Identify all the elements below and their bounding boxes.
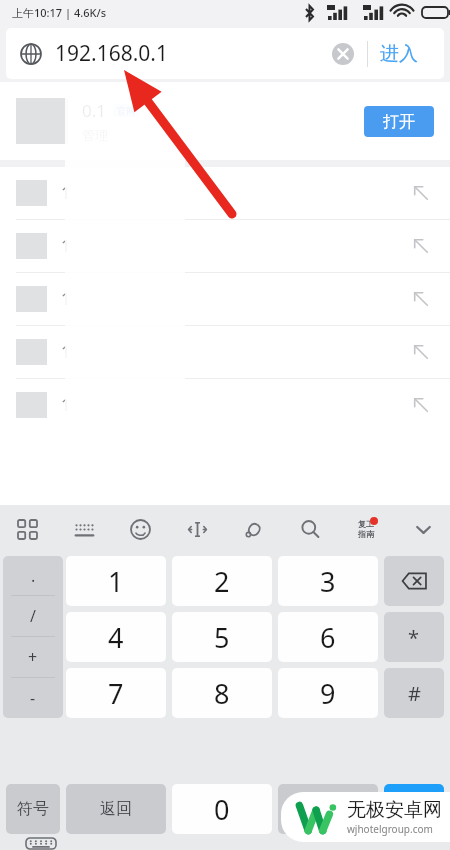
staticText: 上午10:17 | 4.6K/s [12,5,107,20]
button[interactable]: 复工 [349,512,383,546]
staticText: 打开 [383,112,415,132]
button[interactable]: 7 [66,668,166,718]
button[interactable]: 9 [278,668,378,718]
staticText: 进入 [397,799,431,820]
button[interactable]: Search [293,512,327,546]
button[interactable]: Switch keyboard [24,837,58,850]
button[interactable]: 0 [172,784,272,834]
staticText: 192.168.0.1 [55,39,168,68]
button[interactable]: 进入 [384,784,444,834]
staticText: 0 [214,791,230,828]
button[interactable]: 1 [0,326,450,378]
staticText: 6 [320,619,336,656]
staticText: 指南 [358,529,374,539]
staticText: 返回 [100,799,132,819]
button[interactable]: Apps [10,512,44,546]
button[interactable]: 8 [172,668,272,718]
button[interactable]: 2 [172,556,272,606]
button[interactable]: 0.1 [0,82,450,160]
button[interactable]: 192.168.0.1 [6,28,444,79]
button[interactable]: Clip [236,512,270,546]
staticText: 8 [214,675,230,712]
button[interactable]: 1 [0,167,450,219]
button[interactable]: Fill search [408,233,434,259]
button[interactable]: 打开 [364,106,434,137]
staticText: 1 [61,341,71,363]
button[interactable]: Cursor [180,512,214,546]
button[interactable]: Fill search [408,392,434,418]
button[interactable]: Hide keyboard [406,512,440,546]
staticText: 无极安卓网 [347,798,442,822]
staticText: 符号 [17,799,49,819]
staticText: 7 [108,675,124,712]
button[interactable]: * [384,612,444,662]
button[interactable]: Emoji [123,512,157,546]
button[interactable]: Fill search [408,180,434,206]
staticText: 3 [320,563,336,600]
staticText: 复工 [358,519,374,529]
staticText: . [31,565,36,587]
staticText: + [28,646,38,668]
staticText: wjhotelgroup.com [347,822,433,836]
button[interactable]: Fill search [408,339,434,365]
staticText: 9 [320,675,336,712]
staticText: 1 [108,563,124,600]
button[interactable]: 5 [172,612,272,662]
staticText: 1 [61,235,71,257]
button[interactable]: 1 [0,220,450,272]
button[interactable]: 1 [0,379,450,431]
button[interactable]: Backspace [384,556,444,606]
staticText: 1 [61,288,71,310]
button[interactable]: # [384,668,444,718]
staticText: 1 [61,394,71,416]
button[interactable]: 1 [0,273,450,325]
button[interactable]: 4 [66,612,166,662]
staticText: / [30,605,36,627]
button[interactable]: 返回 [66,784,166,834]
staticText: 进入 [380,42,418,66]
button[interactable]: 6 [278,612,378,662]
staticText: # [408,680,421,707]
button[interactable]: Keyboard [67,512,101,546]
button[interactable]: Clear [328,39,358,69]
staticText: 空格 [312,799,344,819]
staticText: 官网 [117,105,135,116]
button[interactable]: . [3,556,63,718]
staticText: * [408,624,420,651]
button[interactable]: 3 [278,556,378,606]
button[interactable]: 进入 [368,28,430,79]
button[interactable]: 1 [66,556,166,606]
staticText: 4 [108,619,124,656]
staticText: 1 [61,182,71,204]
staticText: 0.1 [82,99,107,122]
staticText: 5 [214,619,230,656]
staticText: 2 [214,563,230,600]
button[interactable]: 空格 [278,784,378,834]
button[interactable]: Fill search [408,286,434,312]
staticText: - [30,687,36,709]
button[interactable]: 符号 [6,784,60,834]
